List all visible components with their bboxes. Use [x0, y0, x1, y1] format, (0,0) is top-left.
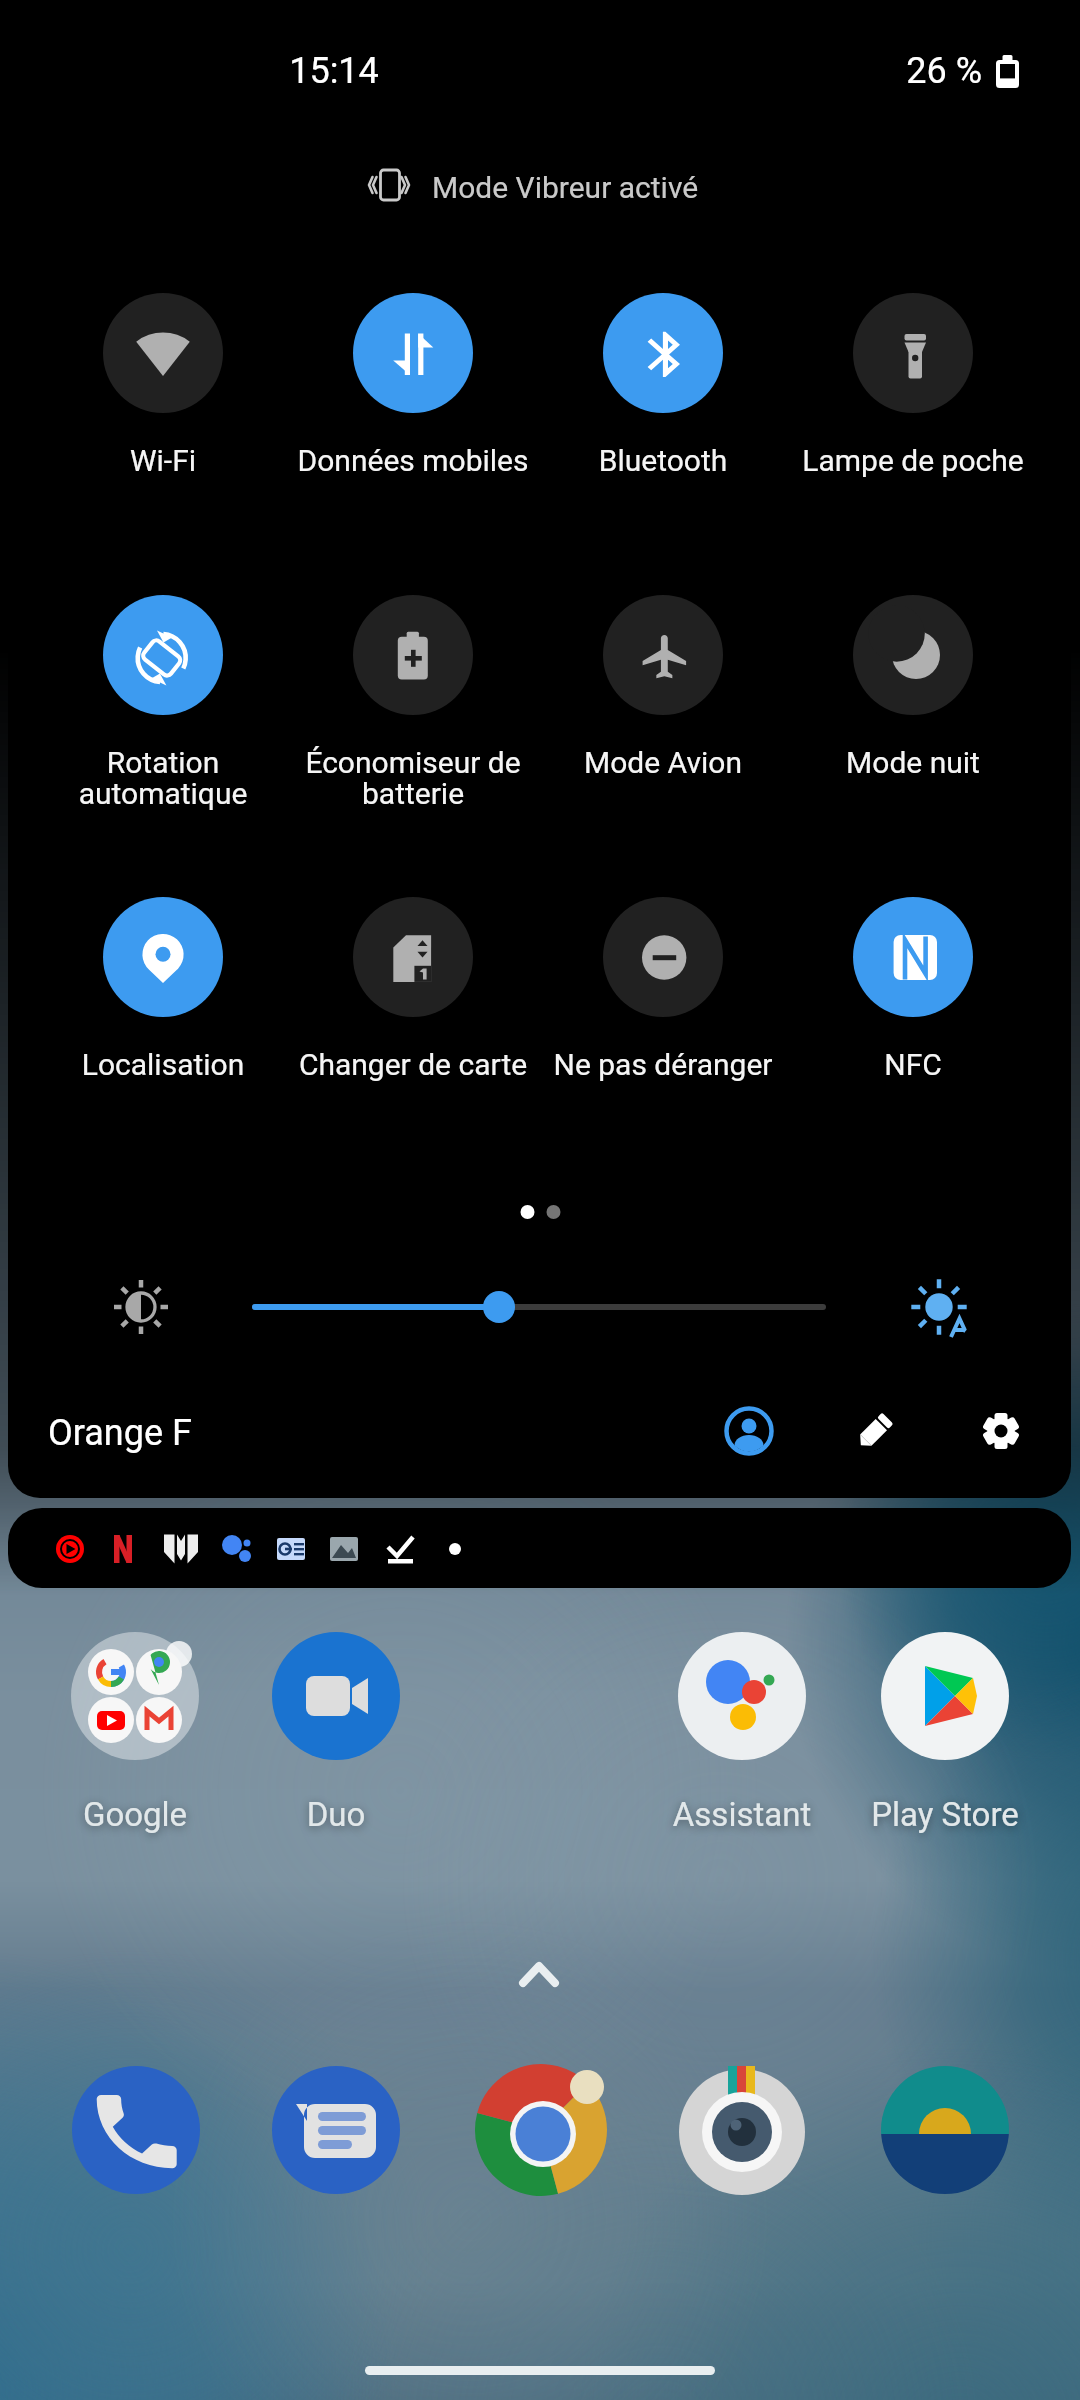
staticText: NFC: [794, 1047, 1032, 1082]
button[interactable]: Économiseur de batterie: [288, 593, 538, 793]
button[interactable]: Appareil photo: [678, 2066, 806, 2194]
button[interactable]: Modifier: [833, 1389, 917, 1473]
staticText: Duo: [244, 1795, 428, 1834]
staticText: Google: [43, 1795, 227, 1834]
button[interactable]: Google: [43, 1626, 227, 1816]
staticText: Orange F: [48, 1412, 192, 1454]
button[interactable]: Play Store: [853, 1626, 1037, 1816]
button[interactable]: Données mobiles: [288, 291, 538, 491]
button[interactable]: Changer de carte: [288, 895, 538, 1095]
staticText: Play Store: [853, 1795, 1037, 1834]
button[interactable]: Mode Avion: [538, 593, 788, 793]
button[interactable]: Curseur de luminosité: [235, 1271, 843, 1343]
staticText: Données mobiles: [294, 443, 532, 478]
button[interactable]: [8, 1508, 1071, 1588]
button[interactable]: Paramètres: [959, 1389, 1043, 1473]
button[interactable]: Mode nuit: [788, 593, 1038, 793]
staticText: Bluetooth: [544, 443, 782, 478]
button[interactable]: Messages: [272, 2066, 400, 2194]
staticText: Changer de carte: [294, 1047, 532, 1082]
button[interactable]: Ne pas déranger: [538, 895, 788, 1095]
button[interactable]: Luminosité: [105, 1271, 177, 1343]
staticText: Mode Avion: [544, 745, 782, 780]
button[interactable]: Luminosité automatique: [903, 1271, 975, 1343]
button[interactable]: Assistant: [650, 1626, 834, 1816]
button[interactable]: Localisation: [38, 895, 288, 1095]
staticText: Mode nuit: [794, 745, 1032, 780]
button[interactable]: NFC: [788, 895, 1038, 1095]
button[interactable]: Ouvrir la liste des applications: [490, 1940, 590, 2010]
staticText: 15:14: [234, 50, 434, 92]
button[interactable]: Wi-Fi: [38, 291, 288, 491]
button[interactable]: Rotation automatique: [38, 593, 288, 793]
staticText: Wi-Fi: [44, 443, 282, 478]
button[interactable]: Lampe de poche: [788, 291, 1038, 491]
staticText: Localisation: [44, 1047, 282, 1082]
button[interactable]: Compte utilisateur: [707, 1389, 791, 1473]
button[interactable]: Chrome: [477, 2066, 605, 2194]
button[interactable]: Météo: [881, 2066, 1009, 2194]
staticText: Ne pas déranger: [544, 1047, 782, 1082]
staticText: Assistant: [650, 1795, 834, 1834]
staticText: Rotation automatique: [44, 745, 282, 812]
staticText: 26 %: [782, 50, 982, 92]
staticText: Mode Vibreur activé: [432, 170, 699, 205]
button[interactable]: Téléphone: [72, 2066, 200, 2194]
button[interactable]: Duo: [244, 1626, 428, 1816]
staticText: Économiseur de batterie: [294, 745, 532, 812]
staticText: Lampe de poche: [794, 443, 1032, 478]
button[interactable]: Bluetooth: [538, 291, 788, 491]
